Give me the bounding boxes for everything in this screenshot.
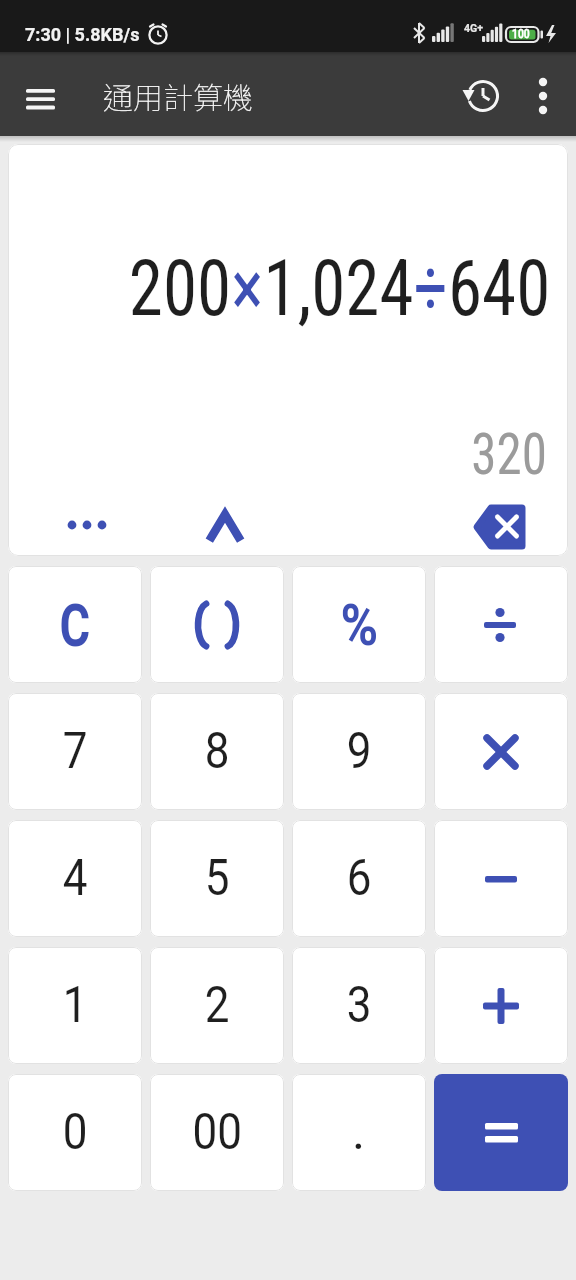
staticText: 1 [63, 976, 88, 1035]
button[interactable] [447, 494, 555, 556]
button[interactable] [434, 693, 568, 810]
button[interactable]: 6 [292, 820, 426, 937]
button[interactable]: 0 [8, 1074, 142, 1191]
staticText: 6 [347, 849, 372, 908]
button[interactable]: 3 [292, 947, 426, 1064]
button[interactable]: % [292, 566, 426, 683]
button[interactable] [434, 820, 568, 937]
button[interactable]: 00 [150, 1074, 284, 1191]
staticText: % [341, 591, 378, 659]
button[interactable] [13, 80, 69, 120]
staticText: 8 [205, 722, 230, 781]
staticText: 3 [347, 976, 372, 1035]
button[interactable]: 9 [292, 693, 426, 810]
button[interactable]: 5 [150, 820, 284, 937]
button[interactable] [188, 495, 262, 556]
button[interactable]: 4 [8, 820, 142, 937]
button[interactable] [434, 566, 568, 683]
staticText: 7:30 | 5.8KB/s [25, 24, 140, 45]
staticText: 00 [192, 1103, 243, 1162]
button[interactable] [519, 68, 567, 124]
staticText: 通用計算機 [103, 74, 253, 117]
button[interactable]: C [8, 566, 142, 683]
button[interactable] [150, 566, 284, 683]
button[interactable]: 8 [150, 693, 284, 810]
staticText: 0 [63, 1103, 88, 1162]
button[interactable] [434, 1074, 568, 1191]
staticText: 9 [347, 722, 372, 781]
button[interactable] [44, 499, 129, 551]
button[interactable] [434, 947, 568, 1064]
staticText: 100 [512, 27, 530, 41]
staticText: 2 [205, 976, 230, 1035]
staticText: 200×1,024÷640 [129, 243, 551, 334]
button[interactable]: 2 [150, 947, 284, 1064]
staticText: 4G+ [464, 22, 483, 34]
staticText: C [59, 590, 91, 660]
staticText: 320 [471, 420, 547, 488]
button[interactable] [454, 68, 510, 124]
button[interactable]: . [292, 1074, 426, 1191]
staticText: 7 [63, 722, 88, 781]
staticText: . [352, 1103, 366, 1162]
staticText: 5 [205, 849, 230, 908]
button[interactable]: 7 [8, 693, 142, 810]
button[interactable]: 1 [8, 947, 142, 1064]
staticText: 4 [63, 849, 88, 908]
